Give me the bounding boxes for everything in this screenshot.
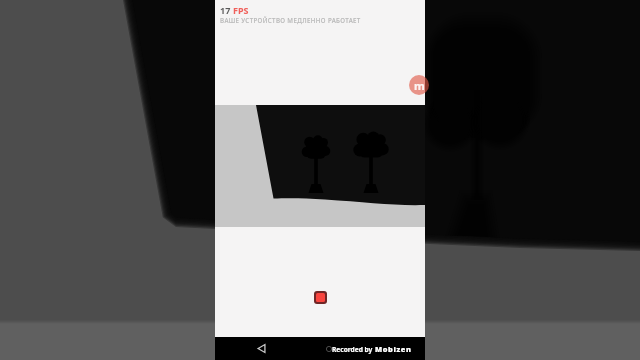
staticText: m (414, 78, 425, 93)
staticText: Mobizen (375, 344, 412, 354)
staticText: ВАШЕ УСТРОЙСТВО МЕДЛЕННО РАБОТАЕТ (220, 16, 361, 24)
staticText: Recorded by (332, 345, 375, 354)
staticText: 17 (220, 4, 233, 16)
button[interactable]: Stop recording (314, 291, 327, 304)
staticText: FPS (233, 4, 249, 16)
other: Mobizen watermark (409, 75, 429, 95)
button[interactable]: Back (215, 337, 307, 360)
